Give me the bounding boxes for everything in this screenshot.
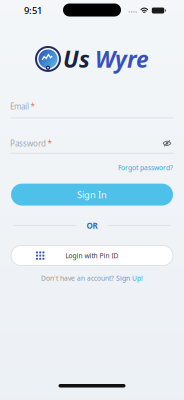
staticText: Email <box>10 101 29 112</box>
staticText: Login with Pin ID <box>65 251 118 260</box>
staticText: Sign In <box>77 188 107 201</box>
staticText: Forgot password? <box>118 163 173 172</box>
staticText: Us <box>63 44 90 74</box>
staticText: Don't have an account? <box>41 274 114 283</box>
button[interactable]: Sign Up! <box>116 274 143 283</box>
button[interactable]: Show password <box>162 140 174 147</box>
button[interactable]: Sign In <box>11 184 173 206</box>
staticText: Sign Up! <box>116 274 143 283</box>
button[interactable]: Forgot password? <box>118 163 173 172</box>
staticText: * <box>47 138 51 149</box>
button[interactable]: Login with Pin ID <box>11 246 173 266</box>
staticText: 9:51 <box>24 4 42 17</box>
staticText: OR <box>86 220 97 231</box>
staticText: Wyre <box>95 44 149 74</box>
staticText: * <box>30 101 34 112</box>
staticText: Password <box>10 138 46 149</box>
